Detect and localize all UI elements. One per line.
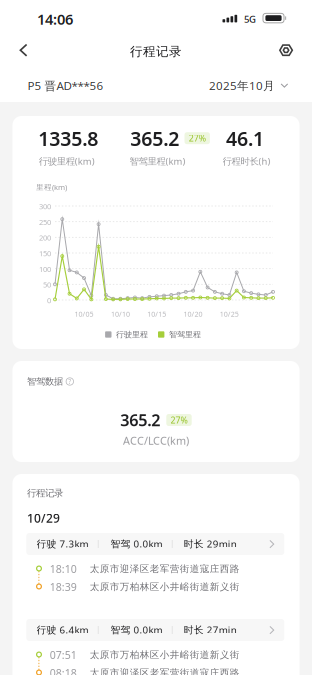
staticText: 里程(km) [36, 182, 67, 192]
staticText: 1335.8 [38, 125, 98, 152]
staticText: 27% [189, 132, 206, 144]
staticText: 行驶里程(km) [39, 155, 95, 167]
staticText: 10/20 [183, 309, 202, 319]
staticText: 365.2 [130, 125, 179, 152]
button[interactable]: 行驶 7.3km [26, 533, 284, 591]
staticText: 07:51 [50, 648, 77, 662]
staticText: 08:18 [50, 666, 77, 675]
staticText: 50 [43, 279, 51, 290]
staticText: 18:39 [50, 580, 77, 594]
staticText: 300 [39, 201, 51, 211]
button[interactable]: 返回 [7, 34, 39, 66]
staticText: 0 [47, 295, 51, 305]
button[interactable]: P5 晋AD***56 [27, 74, 117, 96]
staticText: ? [68, 377, 71, 386]
staticText: 智驾里程 [169, 329, 201, 340]
staticText: 行驶 7.3km [36, 537, 88, 550]
staticText: 行程记录 [130, 44, 182, 59]
staticText: 200 [39, 232, 51, 243]
staticText: 行驶 6.4km [36, 623, 88, 636]
staticText: 14:06 [37, 9, 73, 29]
staticText: 太原市迎泽区老军营街道寇庄西路 [90, 667, 240, 675]
staticText: 10/29 [27, 510, 60, 526]
staticText: 365.2 [120, 409, 160, 431]
staticText: 100 [39, 264, 51, 274]
staticText: 18:10 [50, 562, 77, 576]
staticText: 太原市万柏林区小井峪街道新义街 [90, 581, 240, 593]
staticText: 5G [244, 12, 256, 26]
staticText: 10/25 [220, 309, 239, 319]
staticText: 太原市迎泽区老军营街道寇庄西路 [90, 563, 240, 575]
staticText: 10/15 [147, 309, 166, 319]
staticText: 250 [39, 217, 51, 227]
staticText: 150 [39, 248, 51, 258]
staticText: 时长 27min [184, 623, 237, 636]
staticText: 2025年10月 [209, 78, 275, 93]
staticText: 太原市万柏林区小井峪街道新义街 [90, 649, 240, 661]
button[interactable]: 行驶 6.4km [26, 619, 284, 675]
staticText: 27% [170, 414, 187, 426]
staticText: 时长 29min [184, 537, 237, 550]
staticText: 智驾 0.0km [111, 623, 163, 636]
staticText: 行驶里程 [116, 329, 148, 340]
staticText: ACC/LCC(km) [123, 433, 189, 448]
staticText: 10/10 [111, 309, 130, 319]
staticText: P5 晋AD***56 [27, 78, 103, 93]
staticText: 智驾里程(km) [129, 155, 185, 167]
staticText: 46.1 [226, 125, 264, 152]
button[interactable]: 设置 [270, 34, 302, 66]
button[interactable]: 2025年10月 [209, 74, 288, 96]
staticText: 智驾数据 [27, 376, 63, 387]
staticText: 行程记录 [27, 487, 63, 499]
staticText: 智驾 0.0km [111, 537, 163, 550]
staticText: 行程时长(h) [222, 155, 270, 167]
staticText: 10/05 [75, 309, 94, 319]
